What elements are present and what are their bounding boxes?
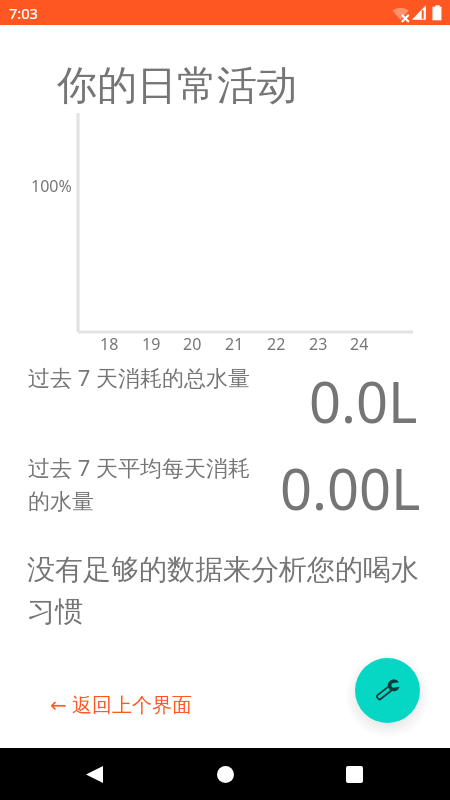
button[interactable]: Recent apps [332, 752, 376, 796]
button[interactable]: Home [203, 752, 247, 796]
staticText: 过去 7 天消耗的总水量 [28, 362, 251, 392]
staticText: 21 [225, 333, 244, 355]
staticText: 没有足够的数据来分析您的喝水习惯 [27, 552, 425, 642]
staticText: 20 [183, 333, 202, 355]
staticText: 100% [31, 175, 72, 197]
staticText: 0.00L [280, 450, 421, 526]
button[interactable]: Settings [355, 658, 420, 723]
staticText: 18 [100, 333, 119, 355]
staticText: 22 [267, 333, 286, 355]
staticText: 你的日常活动 [57, 60, 297, 110]
button[interactable]: Back [72, 752, 116, 796]
staticText: 19 [142, 333, 161, 355]
staticText: 23 [309, 333, 328, 355]
staticText: 过去 7 天平均每天消耗 的水量 [28, 452, 251, 515]
staticText: 24 [350, 333, 369, 355]
staticText: 0.0L [309, 363, 418, 439]
staticText: 7:03 [9, 3, 38, 23]
button[interactable]: ← 返回上个界面 [44, 686, 198, 723]
staticText: ← 返回上个界面 [50, 691, 192, 718]
